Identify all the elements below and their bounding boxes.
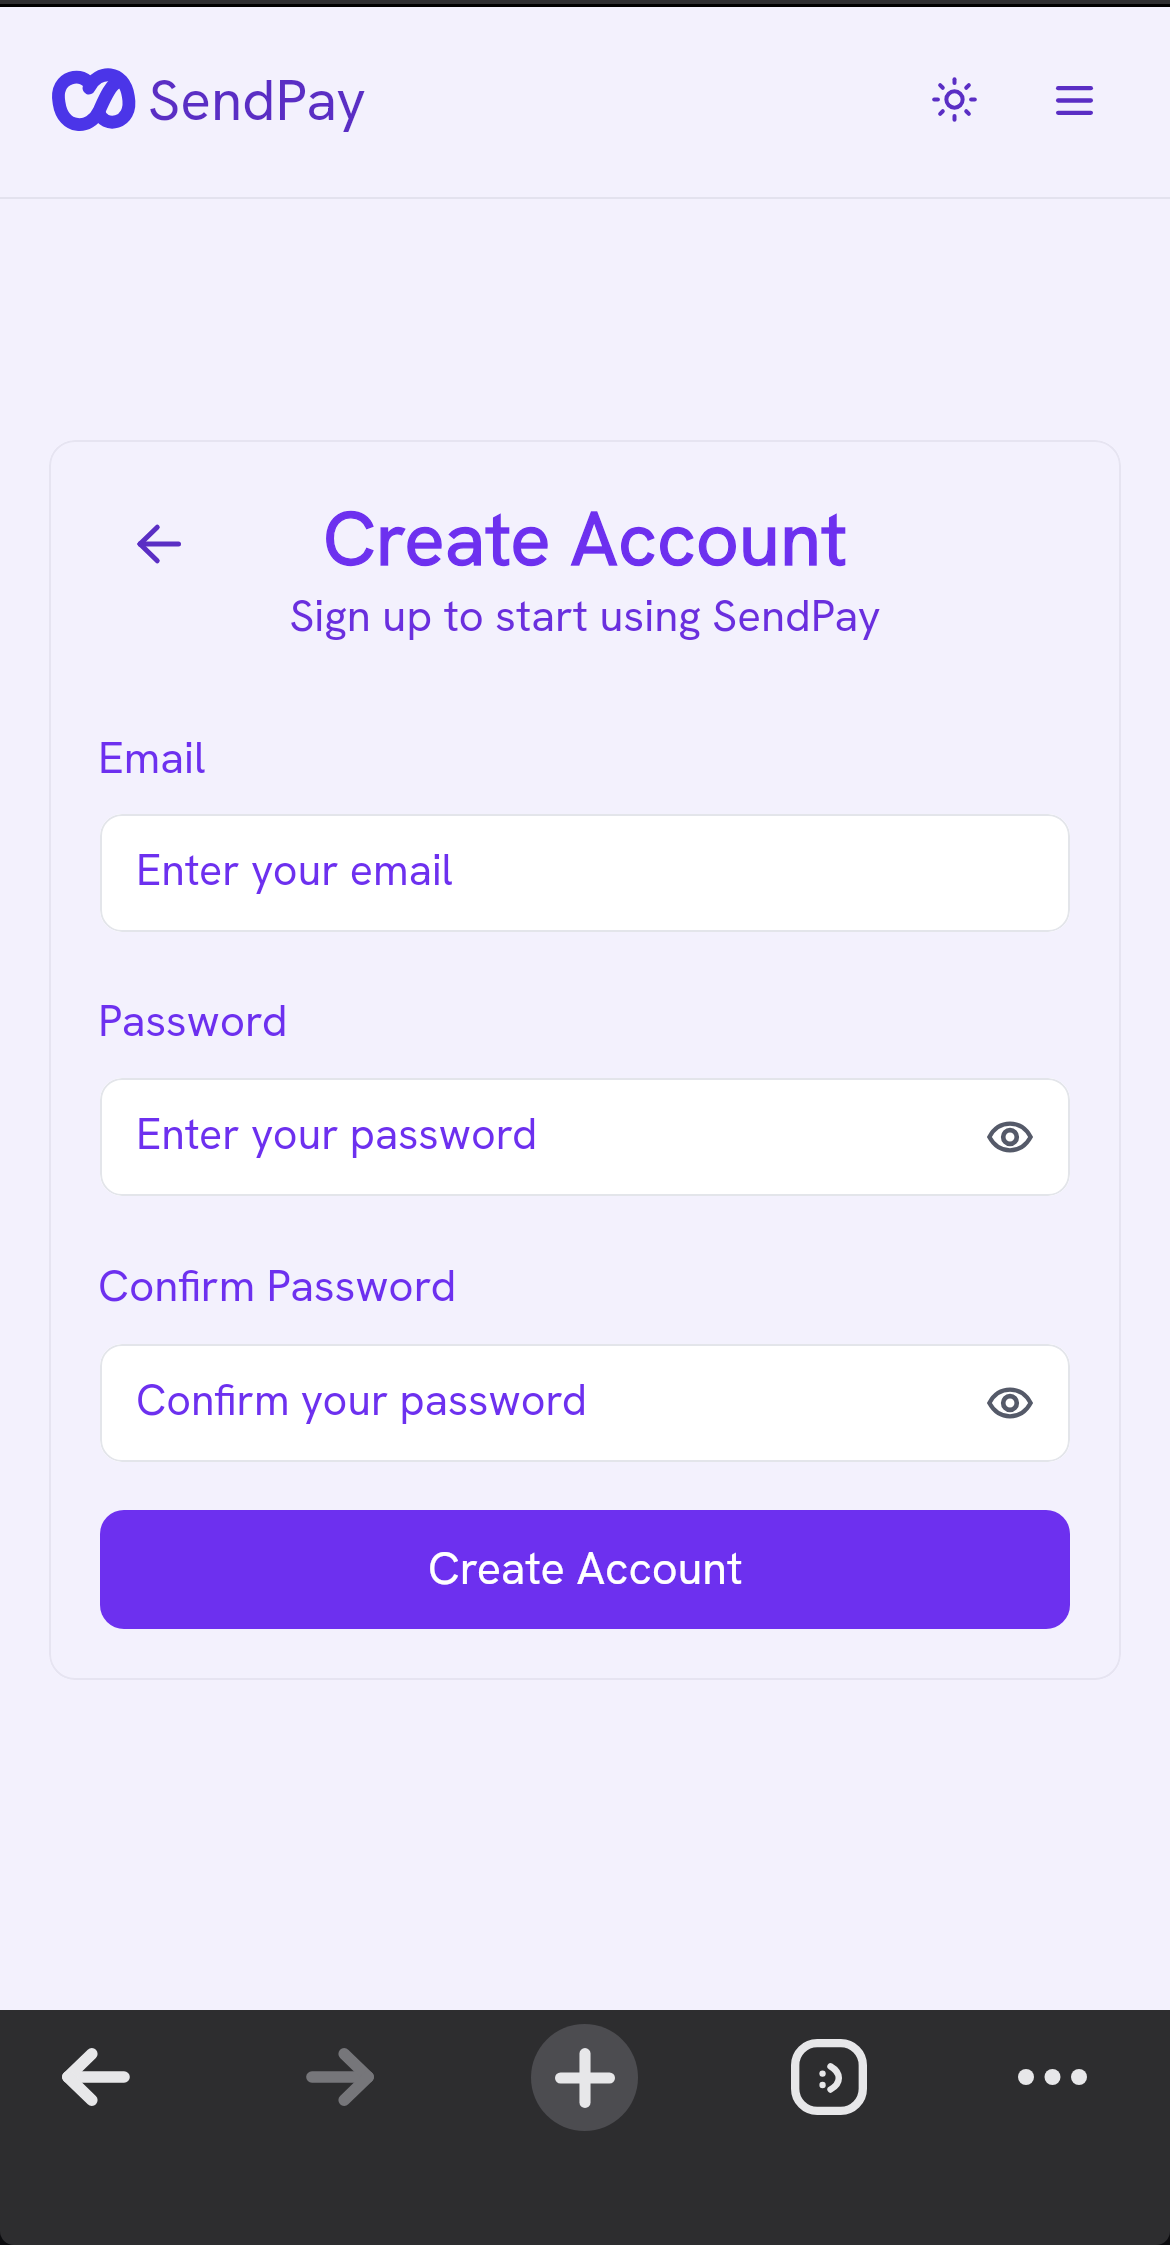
button[interactable]: Show password xyxy=(974,1367,1046,1439)
button[interactable]: Tabs xyxy=(781,2029,877,2125)
staticText: Create Account xyxy=(49,490,1121,588)
staticText: Sign up to start using SendPay xyxy=(49,587,1121,644)
button[interactable]: Enter your email xyxy=(100,814,1070,932)
button[interactable]: SendPay xyxy=(40,52,376,148)
button[interactable]: More options xyxy=(1004,2029,1100,2125)
button[interactable]: New tab xyxy=(531,2024,638,2131)
button[interactable]: Back xyxy=(48,2029,144,2125)
staticText: Email xyxy=(98,729,206,786)
staticText: Enter your email xyxy=(136,842,453,898)
button[interactable]: Show password xyxy=(974,1101,1046,1173)
button[interactable]: Back xyxy=(119,504,199,584)
staticText: Create Account xyxy=(428,1539,743,1598)
staticText: Confirm Password xyxy=(98,1257,457,1314)
button[interactable]: Confirm your password xyxy=(100,1344,1070,1462)
button[interactable]: Toggle light mode xyxy=(906,51,1002,147)
button[interactable]: Forward xyxy=(292,2029,388,2125)
button[interactable]: Open menu xyxy=(1026,52,1122,148)
staticText: Create Account xyxy=(49,490,1121,588)
staticText: Confirm your password xyxy=(136,1372,587,1428)
button[interactable]: Create Account xyxy=(100,1510,1070,1629)
button[interactable]: Enter your password xyxy=(100,1078,1070,1196)
staticText: Enter your password xyxy=(136,1106,538,1162)
staticText: Password xyxy=(98,992,288,1049)
staticText: SendPay xyxy=(148,63,366,137)
